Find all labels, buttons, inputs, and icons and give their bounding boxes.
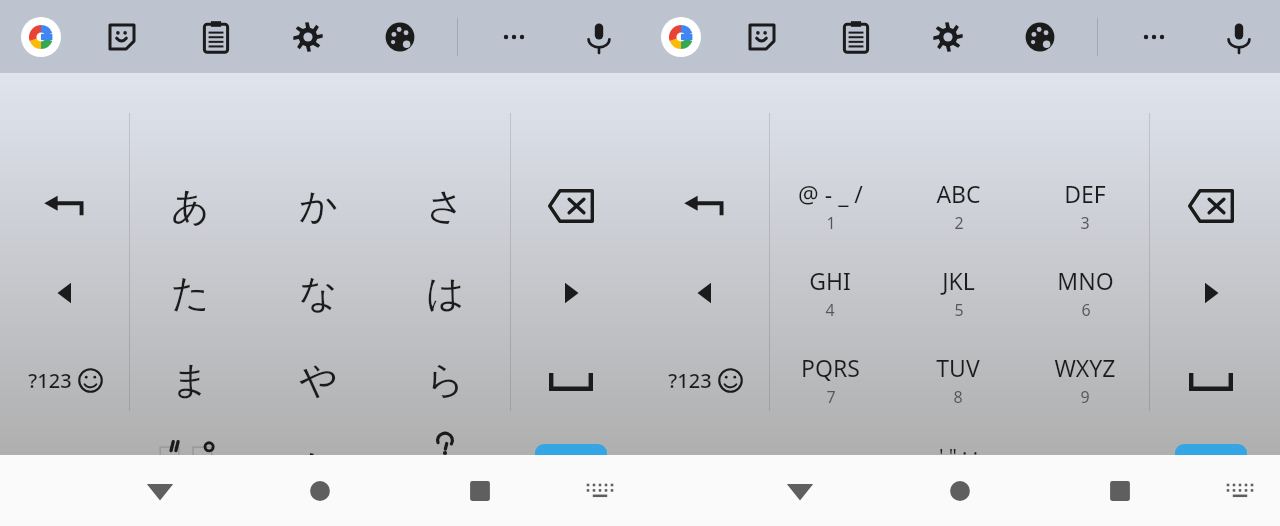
button[interactable]: ら bbox=[385, 337, 505, 423]
button[interactable]: Recents bbox=[448, 459, 512, 523]
staticText: ま bbox=[171, 356, 210, 404]
button[interactable]: Themes bbox=[374, 11, 426, 63]
button[interactable]: Voice input bbox=[1213, 11, 1265, 63]
button[interactable]: わ bbox=[258, 425, 378, 511]
staticText: ?123 bbox=[28, 367, 72, 394]
button[interactable]: Space bbox=[1151, 337, 1271, 423]
button[interactable]: か bbox=[258, 163, 378, 249]
button[interactable]: Small kana and dakuten bbox=[130, 425, 250, 511]
button[interactable]: Settings bbox=[282, 11, 334, 63]
button[interactable]: Recents bbox=[1088, 459, 1152, 523]
button[interactable]: ABC bbox=[898, 163, 1018, 249]
button[interactable]: Enter bbox=[1156, 433, 1266, 503]
button[interactable]: Clipboard bbox=[830, 11, 882, 63]
staticText: 9 bbox=[1080, 386, 1090, 408]
button[interactable]: Enter bbox=[516, 433, 626, 503]
button[interactable]: Google assistant bbox=[655, 11, 707, 63]
staticText: a bbox=[71, 450, 87, 487]
staticText: ' " : ; bbox=[939, 442, 978, 469]
button[interactable]: Punctuation bbox=[385, 425, 505, 511]
staticText: a ⇔ A bbox=[802, 453, 859, 483]
staticText: 4 bbox=[825, 299, 835, 321]
button[interactable]: Switch keyboard bbox=[568, 459, 632, 523]
button[interactable]: Home bbox=[928, 459, 992, 523]
button[interactable]: Space bbox=[511, 337, 631, 423]
button[interactable]: Switch language bbox=[645, 425, 765, 511]
staticText: @ - _ / bbox=[798, 178, 863, 209]
button[interactable]: Stickers bbox=[96, 11, 148, 63]
button[interactable]: Clipboard bbox=[190, 11, 242, 63]
button[interactable]: Backspace bbox=[511, 163, 631, 249]
staticText: な bbox=[299, 269, 338, 317]
button[interactable]: Symbols and emoji bbox=[645, 337, 765, 423]
staticText: PQRS bbox=[801, 352, 860, 383]
button[interactable]: Back bbox=[128, 459, 192, 523]
button[interactable]: Quotes and colon bbox=[898, 425, 1018, 511]
button[interactable]: JKL bbox=[898, 250, 1018, 336]
staticText: わ bbox=[299, 444, 338, 492]
button[interactable]: Back bbox=[768, 459, 832, 523]
button[interactable]: Cursor right bbox=[1151, 250, 1271, 336]
button[interactable]: Cursor right bbox=[511, 250, 631, 336]
button[interactable]: WXYZ bbox=[1025, 337, 1145, 423]
button[interactable]: GHI bbox=[770, 250, 890, 336]
staticText: や bbox=[299, 356, 338, 404]
staticText: 1 bbox=[826, 212, 836, 234]
button[interactable]: Themes bbox=[1014, 11, 1066, 63]
button[interactable]: Switch keyboard bbox=[1208, 459, 1272, 523]
staticText: 6 bbox=[1081, 299, 1091, 321]
staticText: WXYZ bbox=[1054, 352, 1116, 383]
button[interactable]: は bbox=[385, 250, 505, 336]
button[interactable]: DEF bbox=[1025, 163, 1145, 249]
button[interactable]: さ bbox=[385, 163, 505, 249]
button[interactable]: MNO bbox=[1025, 250, 1145, 336]
button[interactable]: Switch language bbox=[5, 425, 125, 511]
button[interactable]: Cursor left bbox=[5, 250, 125, 336]
button[interactable]: た bbox=[130, 250, 250, 336]
button[interactable]: @ - _ / bbox=[770, 163, 890, 249]
button[interactable]: More options bbox=[1128, 11, 1180, 63]
staticText: 5 bbox=[954, 299, 964, 321]
staticText: あ bbox=[171, 182, 210, 230]
staticText: ら bbox=[426, 356, 465, 404]
staticText: TUV bbox=[936, 352, 980, 383]
staticText: 0 bbox=[954, 473, 964, 495]
button[interactable]: Toggle case bbox=[770, 425, 890, 511]
staticText: a bbox=[711, 450, 728, 487]
button[interactable]: Undo bbox=[5, 163, 125, 249]
button[interactable]: あ bbox=[130, 163, 250, 249]
staticText: DEF bbox=[1064, 178, 1106, 209]
staticText: JKL bbox=[942, 265, 975, 296]
button[interactable]: Stickers bbox=[736, 11, 788, 63]
button[interactable]: PQRS bbox=[770, 337, 890, 423]
button[interactable]: Voice input bbox=[573, 11, 625, 63]
staticText: 2 bbox=[954, 212, 964, 234]
button[interactable]: な bbox=[258, 250, 378, 336]
staticText: 7 bbox=[826, 386, 836, 408]
button[interactable]: Home bbox=[288, 459, 352, 523]
staticText: 大 ⇔ 小 bbox=[166, 475, 214, 494]
staticText: GHI bbox=[809, 265, 851, 296]
button[interactable]: ま bbox=[130, 337, 250, 423]
button[interactable]: Google assistant bbox=[15, 11, 67, 63]
staticText: は bbox=[426, 269, 465, 317]
staticText: た bbox=[171, 269, 210, 317]
staticText: 8 bbox=[953, 386, 963, 408]
button[interactable]: や bbox=[258, 337, 378, 423]
staticText: MNO bbox=[1057, 265, 1114, 296]
button[interactable]: Settings bbox=[922, 11, 974, 63]
staticText: あ bbox=[683, 452, 711, 486]
button[interactable]: TUV bbox=[898, 337, 1018, 423]
staticText: さ bbox=[426, 182, 465, 230]
staticText: あ bbox=[43, 452, 71, 486]
button[interactable]: Backspace bbox=[1151, 163, 1271, 249]
button[interactable]: Cursor left bbox=[645, 250, 765, 336]
button[interactable]: Undo bbox=[645, 163, 765, 249]
button[interactable]: More options bbox=[488, 11, 540, 63]
staticText: ?123 bbox=[668, 367, 712, 394]
staticText: か bbox=[299, 182, 338, 230]
staticText: ABC bbox=[936, 178, 981, 209]
button[interactable]: Punctuation bbox=[1025, 425, 1145, 511]
button[interactable]: Symbols and emoji bbox=[5, 337, 125, 423]
